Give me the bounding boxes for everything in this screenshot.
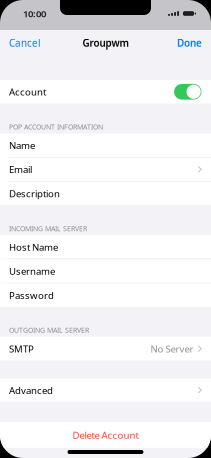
button[interactable]: Password (0, 283, 211, 307)
staticText: Host Name (9, 240, 58, 253)
button[interactable]: Done (171, 31, 211, 55)
staticText: Done (177, 36, 202, 50)
staticText: Email (9, 163, 32, 176)
staticText: Groupwm (82, 36, 128, 50)
button[interactable]: Host Name (0, 235, 211, 259)
button[interactable]: Description (0, 182, 211, 205)
staticText: 10:00 (23, 7, 46, 20)
staticText: Password (9, 289, 54, 302)
staticText: Username (9, 264, 55, 278)
button[interactable]: Cancel (0, 31, 47, 55)
button[interactable]: Email (0, 158, 211, 181)
staticText: SMTP (9, 342, 34, 355)
button[interactable]: Username (0, 259, 211, 283)
button[interactable]: SMTP (0, 337, 211, 360)
staticText: Description (9, 187, 60, 200)
staticText: INCOMING MAIL SERVER (9, 224, 87, 233)
button[interactable]: Advanced (0, 378, 211, 402)
staticText: POP ACCOUNT INFORMATION (9, 122, 103, 131)
staticText: Advanced (9, 384, 53, 397)
staticText: Account (9, 85, 46, 98)
button[interactable]: Delete Account (0, 422, 211, 448)
staticText: Cancel (9, 36, 41, 50)
staticText: No Server (151, 342, 194, 355)
button[interactable]: Account (0, 80, 211, 103)
staticText: Delete Account (72, 428, 138, 441)
staticText: Name (9, 139, 35, 152)
button[interactable]: Name (0, 133, 211, 157)
staticText: OUTGOING MAIL SERVER (9, 325, 89, 335)
